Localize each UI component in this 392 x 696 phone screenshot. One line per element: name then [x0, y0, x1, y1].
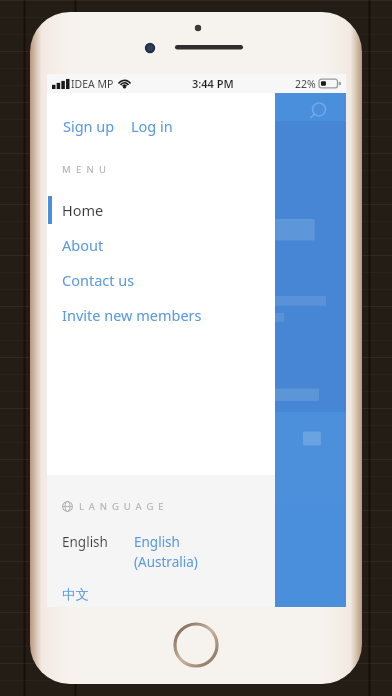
staticText: M E N U — [62, 163, 108, 176]
staticText: Sign up — [63, 116, 115, 136]
staticText: Log in — [131, 116, 173, 136]
staticText: (Australia) — [134, 553, 198, 571]
staticText: About — [62, 235, 104, 255]
staticText: IDEA MP — [71, 77, 114, 91]
staticText: Invite new members — [62, 305, 202, 325]
staticText: English — [134, 533, 180, 551]
button[interactable]: Home — [47, 192, 275, 227]
button[interactable]: English — [133, 531, 199, 573]
staticText: Contact us — [62, 270, 135, 290]
staticText: 22% — [295, 77, 316, 91]
button[interactable]: English — [47, 531, 133, 553]
staticText: L A N G U A G E — [79, 500, 165, 513]
staticText: English — [62, 533, 108, 551]
staticText: 中文 — [62, 586, 89, 603]
staticText: 3:44 PM — [192, 76, 234, 91]
button[interactable]: Log in — [130, 114, 174, 138]
button[interactable]: Contact us — [47, 262, 275, 297]
button[interactable]: Sign up — [62, 114, 116, 138]
button[interactable]: About — [47, 227, 275, 262]
button[interactable]: Invite new members — [47, 297, 275, 332]
button[interactable]: 中文 — [47, 584, 97, 605]
staticText: Home — [62, 200, 104, 220]
